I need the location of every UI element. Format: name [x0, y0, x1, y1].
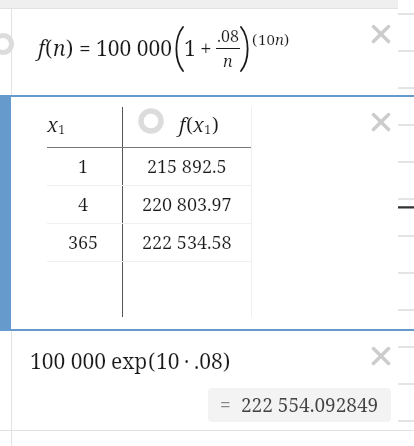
staticText: x — [47, 111, 58, 138]
staticText: 215 892.5 — [147, 154, 227, 179]
button[interactable]: x — [0, 95, 414, 331]
staticText: 222 534.58 — [142, 230, 232, 255]
staticText: .08 — [194, 347, 223, 376]
button[interactable]: Delete expression — [368, 343, 394, 369]
staticText: f — [179, 111, 186, 138]
staticText: x — [193, 111, 204, 138]
button[interactable]: Delete expression — [368, 109, 394, 135]
staticText: ) — [223, 347, 231, 376]
staticText: n — [275, 29, 284, 49]
staticText: 10 — [258, 29, 275, 49]
staticText: = — [79, 34, 91, 63]
button[interactable]: Delete expression — [368, 21, 394, 47]
staticText: ( — [186, 111, 193, 138]
staticText: 222 554.092849 — [241, 392, 379, 418]
staticText: .08 — [217, 25, 239, 47]
staticText: 100 000 — [96, 34, 172, 63]
staticText: 10 — [156, 347, 180, 376]
button[interactable]: 1 — [11, 147, 397, 185]
staticText: n — [223, 50, 233, 72]
staticText: · — [184, 347, 190, 376]
staticText: ( — [252, 29, 258, 49]
button[interactable]: 365 — [11, 223, 397, 261]
staticText: exp — [111, 347, 148, 376]
staticText: 220 803.97 — [142, 192, 232, 217]
staticText: 365 — [68, 230, 99, 255]
staticText: 1 — [78, 154, 89, 179]
staticText: 1 — [58, 120, 66, 138]
button[interactable]: Plot colour — [138, 108, 164, 134]
staticText: ) — [284, 29, 290, 49]
button[interactable]: = — [220, 392, 379, 418]
staticText: + — [200, 34, 212, 63]
staticText: ( — [148, 347, 156, 376]
staticText: ) — [66, 34, 74, 63]
staticText: ) — [212, 111, 219, 138]
staticText: ( — [45, 34, 53, 63]
staticText: n — [53, 34, 66, 63]
staticText: 1 — [204, 120, 212, 138]
staticText: = — [220, 392, 231, 418]
staticText: 1 — [184, 34, 196, 63]
button[interactable]: f — [0, 9, 414, 95]
button[interactable]: 100 000 — [0, 331, 414, 430]
staticText: 100 000 — [30, 347, 106, 376]
staticText: 4 — [78, 192, 89, 217]
button[interactable]: 4 — [11, 185, 397, 223]
staticText: f — [38, 34, 45, 63]
